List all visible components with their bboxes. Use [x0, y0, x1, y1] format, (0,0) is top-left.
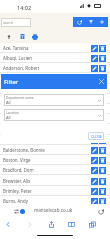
- button[interactable]: search: [1, 18, 31, 27]
- button[interactable]: Delete: [99, 157, 106, 164]
- button[interactable]: Edit: [91, 127, 98, 134]
- button[interactable]: Edit: [91, 116, 98, 123]
- button[interactable]: Edit: [91, 55, 98, 62]
- button[interactable]: Delete: [99, 106, 106, 113]
- staticText: Location: [6, 111, 19, 115]
- button[interactable]: Delete: [99, 127, 106, 134]
- button[interactable]: Filter: [86, 17, 96, 27]
- button[interactable]: Edit: [91, 188, 98, 195]
- staticText: search: [3, 21, 13, 25]
- button[interactable]: Print: [30, 32, 39, 41]
- staticText: CLOSE: [91, 134, 102, 139]
- button[interactable]: Delete: [99, 137, 106, 144]
- staticText: Brewster, Alix: [3, 178, 91, 184]
- button[interactable]: Barnett, Howard: [0, 104, 110, 114]
- button[interactable]: Edit: [91, 65, 98, 72]
- button[interactable]: Boston, Virge: [0, 155, 110, 165]
- button[interactable]: Delete: [99, 147, 106, 154]
- button[interactable]: Sort: [4, 32, 13, 41]
- staticText: Anderson, Robert: [3, 65, 91, 71]
- button[interactable]: Anderson, Robert: [0, 63, 110, 73]
- button[interactable]: Close: [97, 77, 106, 86]
- staticText: All: [6, 100, 11, 105]
- button[interactable]: Search with Lens: [18, 207, 26, 215]
- button[interactable]: Edit: [91, 198, 98, 205]
- button[interactable]: Bradford, Dom: [0, 165, 110, 175]
- button[interactable]: Forward: [23, 218, 35, 230]
- button[interactable]: Balderstone, Bonnie: [0, 145, 110, 155]
- button[interactable]: Albuqi, Lucien: [0, 53, 110, 63]
- button[interactable]: Site settings: [11, 207, 22, 215]
- button[interactable]: Edit: [91, 178, 98, 185]
- staticText: Blackwood, Tessa: [3, 137, 91, 143]
- staticText: Bradford, Dom: [3, 167, 91, 173]
- staticText: Albuqi, Lucien: [3, 55, 91, 61]
- button[interactable]: Edit: [91, 45, 98, 52]
- button[interactable]: Bookmarks: [65, 218, 77, 230]
- button[interactable]: Export to Excel: [18, 32, 27, 41]
- staticText: Filter: [4, 78, 19, 86]
- button[interactable]: Brewster, Alix: [0, 176, 110, 186]
- button[interactable]: Delete: [99, 198, 106, 205]
- button[interactable]: Delete: [99, 188, 106, 195]
- button[interactable]: CLOSE: [88, 132, 104, 140]
- button[interactable]: Tabs: [86, 218, 98, 230]
- staticText: manselscab.co.uk: [34, 207, 73, 213]
- button[interactable]: Baker, Susan: [0, 94, 110, 104]
- button[interactable]: Back: [2, 218, 14, 230]
- button[interactable]: Delete: [99, 65, 106, 72]
- staticText: Burns, Andy: [3, 198, 91, 204]
- button[interactable]: Delete: [99, 76, 106, 83]
- button[interactable]: Delete: [99, 96, 106, 103]
- staticText: Department name: [6, 96, 34, 100]
- button[interactable]: Edit: [91, 167, 98, 174]
- staticText: Atkinson, Grace: [3, 86, 91, 92]
- button[interactable]: Edit: [91, 106, 98, 113]
- button[interactable]: Refresh: [74, 17, 84, 27]
- staticText: Baker, Susan: [3, 96, 91, 102]
- staticText: Bishop, Raymond: [3, 127, 91, 133]
- staticText: Bentley, Claire: [3, 116, 91, 122]
- button[interactable]: Department name: [4, 94, 104, 106]
- button[interactable]: Delete: [99, 45, 106, 52]
- button[interactable]: Edit: [91, 157, 98, 164]
- staticText: Brimley, Peter: [3, 188, 91, 194]
- button[interactable]: Edit: [91, 147, 98, 154]
- staticText: Balderstone, Bonnie: [3, 147, 91, 153]
- staticText: 14:02: [17, 4, 32, 11]
- button[interactable]: Delete: [99, 116, 106, 123]
- button[interactable]: Edit: [91, 86, 98, 93]
- button[interactable]: Bishop, Raymond: [0, 125, 110, 135]
- button[interactable]: Brimley, Peter: [0, 186, 110, 196]
- staticText: Barnett, Howard: [3, 106, 91, 112]
- staticText: Boston, Virge: [3, 157, 91, 163]
- button[interactable]: Bentley, Claire: [0, 114, 110, 124]
- button[interactable]: Delete: [99, 167, 106, 174]
- button[interactable]: Atkinson, Grace: [0, 84, 110, 94]
- staticText: Ashworth, Marina: [3, 76, 91, 82]
- button[interactable]: Delete: [99, 178, 106, 185]
- button[interactable]: Ashworth, Marina: [0, 74, 110, 84]
- button[interactable]: Aze, Tansina: [0, 43, 110, 53]
- button[interactable]: Add: [97, 17, 107, 27]
- button[interactable]: Share: [45, 218, 57, 230]
- button[interactable]: Reload: [96, 207, 106, 217]
- button[interactable]: Delete: [99, 55, 106, 62]
- button[interactable]: Delete: [99, 86, 106, 93]
- button[interactable]: Blackwood, Tessa: [0, 135, 110, 145]
- button[interactable]: Location: [4, 109, 104, 121]
- staticText: Aze, Tansina: [3, 45, 91, 51]
- staticText: All: [6, 115, 11, 120]
- button[interactable]: Edit: [91, 137, 98, 144]
- button[interactable]: Burns, Andy: [0, 196, 110, 206]
